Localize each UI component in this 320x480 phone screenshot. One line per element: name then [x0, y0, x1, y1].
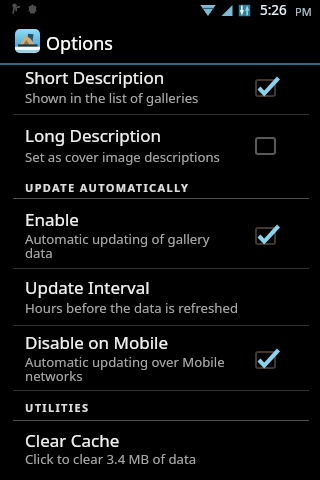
- staticText: Disable on Mobile: [25, 331, 169, 354]
- staticText: Automatic updating of gallery data: [25, 230, 225, 262]
- staticText: Clear Cache: [25, 429, 120, 452]
- staticText: Enable: [25, 208, 79, 231]
- button[interactable]: Short Description: [0, 65, 320, 115]
- staticText: 5:26: [260, 1, 287, 19]
- staticText: PM: [295, 4, 312, 19]
- button[interactable]: Clear Cache: [0, 421, 320, 480]
- button[interactable]: Enable: [0, 199, 320, 268]
- button[interactable]: Long Description: [0, 115, 320, 176]
- staticText: Short Description: [25, 66, 165, 89]
- staticText: Options: [46, 31, 113, 56]
- button[interactable]: Up, Options: [0, 18, 320, 63]
- staticText: Shown in the list of galleries: [25, 89, 243, 107]
- staticText: Long Description: [25, 124, 162, 147]
- staticText: UPDATE AUTOMATICALLY: [25, 180, 190, 195]
- staticText: Update Interval: [25, 276, 150, 299]
- staticText: Set as cover image descriptions: [25, 148, 243, 166]
- staticText: Click to clear 3.4 MB of data: [25, 450, 243, 468]
- staticText: Automatic updating over Mobile networks: [25, 353, 230, 385]
- button[interactable]: Update Interval: [0, 269, 320, 325]
- staticText: Hours before the data is refreshed: [25, 299, 243, 317]
- staticText: UTILITIES: [25, 400, 90, 415]
- button[interactable]: Disable on Mobile: [0, 326, 320, 390]
